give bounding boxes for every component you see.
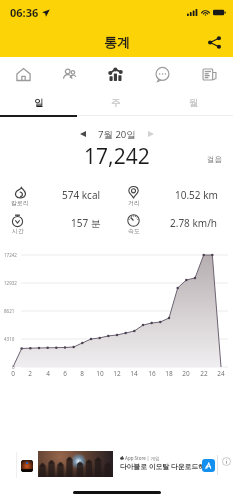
staticText: 주	[111, 97, 121, 109]
button[interactable]: 속도	[116, 214, 233, 235]
staticText: 8	[74, 369, 90, 378]
button[interactable]: News	[186, 57, 233, 91]
staticText: 걸음	[207, 155, 222, 164]
staticText: 20	[178, 369, 194, 378]
staticText: 월	[189, 97, 199, 109]
staticText: 14	[126, 369, 142, 378]
button[interactable]: Friends	[46, 57, 92, 91]
staticText: 22	[196, 369, 212, 378]
staticText: 칼로리	[11, 199, 29, 207]
button[interactable]: Open App Store	[202, 459, 215, 472]
staticText: 속도	[128, 227, 140, 235]
button[interactable]: 시간	[0, 214, 116, 235]
staticText: App Store | 게임	[125, 455, 160, 461]
staticText: 통계	[104, 34, 130, 50]
staticText: 17,242	[84, 142, 150, 168]
staticText: 6	[57, 369, 73, 378]
staticText: 06:36	[10, 5, 39, 20]
button[interactable]: Share	[203, 31, 225, 53]
staticText: 18	[161, 369, 177, 378]
button[interactable]: Ad info	[222, 457, 231, 466]
staticText: 24	[213, 369, 229, 378]
staticText: 17242	[4, 252, 17, 258]
button[interactable]: Next day	[141, 125, 161, 143]
button[interactable]: 주	[77, 91, 155, 117]
staticText: 7월 20일	[98, 128, 136, 141]
staticText: 12	[109, 369, 125, 378]
staticText: 2.78 km/h	[170, 216, 218, 230]
staticText: 574 kcal	[62, 188, 101, 202]
staticText: 0	[12, 364, 15, 370]
staticText: 10	[92, 369, 108, 378]
button[interactable]: Home	[0, 57, 46, 91]
staticText: 일	[34, 97, 44, 109]
staticText: 10.52 km	[175, 188, 218, 202]
button[interactable]: 거리	[116, 186, 233, 207]
button[interactable]: Previous day	[73, 125, 93, 143]
staticText: 거리	[128, 199, 140, 207]
staticText: 시간	[12, 227, 24, 235]
button[interactable]: Statistics	[92, 57, 139, 91]
staticText: 157 분	[71, 216, 101, 230]
button[interactable]: App Store | 게임	[0, 450, 233, 480]
staticText: 8621	[4, 308, 15, 314]
staticText: 다아블로 이모탈 다운로드하기	[120, 462, 212, 471]
staticText: 4310	[4, 336, 15, 342]
staticText: 0	[5, 369, 21, 378]
staticText: 4	[40, 369, 56, 378]
staticText: 12932	[4, 280, 17, 286]
staticText: 16	[144, 369, 160, 378]
button[interactable]: 일	[0, 91, 77, 117]
button[interactable]: Chat	[139, 57, 186, 91]
staticText: 2	[22, 369, 38, 378]
button[interactable]: 월	[155, 91, 233, 117]
button[interactable]: 칼로리	[0, 186, 116, 207]
